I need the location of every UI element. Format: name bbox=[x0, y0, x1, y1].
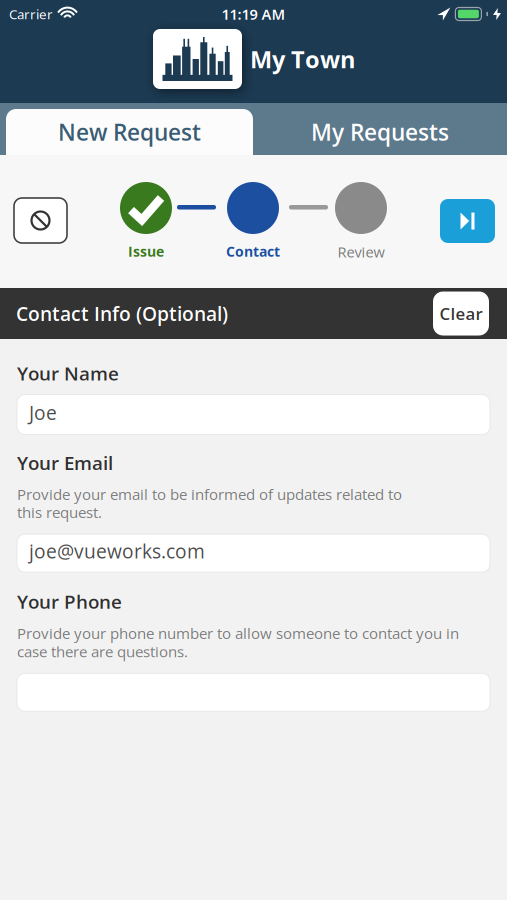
staticText: Joe bbox=[29, 401, 57, 424]
staticText: Your Phone bbox=[17, 590, 122, 613]
staticText: Your Email bbox=[17, 451, 113, 474]
button[interactable]: Skip to review bbox=[440, 199, 495, 243]
button[interactable]: My Requests bbox=[253, 103, 507, 155]
staticText: My Town bbox=[250, 45, 356, 73]
staticText: Carrier bbox=[9, 5, 53, 23]
button[interactable]: Your Phone bbox=[17, 673, 490, 711]
staticText: My Requests bbox=[311, 118, 449, 146]
button[interactable]: Your Email bbox=[17, 534, 490, 572]
staticText: joe@vueworks.com bbox=[29, 540, 205, 563]
staticText: Provide your email to be informed of upd… bbox=[17, 485, 402, 521]
staticText: New Request bbox=[58, 118, 201, 146]
button[interactable]: New Request bbox=[6, 109, 253, 155]
staticText: 11:19 AM bbox=[221, 4, 285, 24]
button[interactable]: Clear bbox=[433, 291, 489, 335]
button[interactable]: Your Name bbox=[17, 394, 490, 434]
staticText: Clear bbox=[439, 303, 482, 323]
staticText: Contact Info (Optional) bbox=[16, 302, 228, 325]
staticText: Provide your phone number to allow someo… bbox=[17, 624, 459, 660]
staticText: Your Name bbox=[17, 362, 119, 384]
staticText: Issue bbox=[128, 243, 164, 260]
staticText: Contact bbox=[226, 243, 280, 260]
button[interactable]: Cancel request bbox=[14, 198, 67, 243]
staticText: Review bbox=[337, 243, 384, 261]
